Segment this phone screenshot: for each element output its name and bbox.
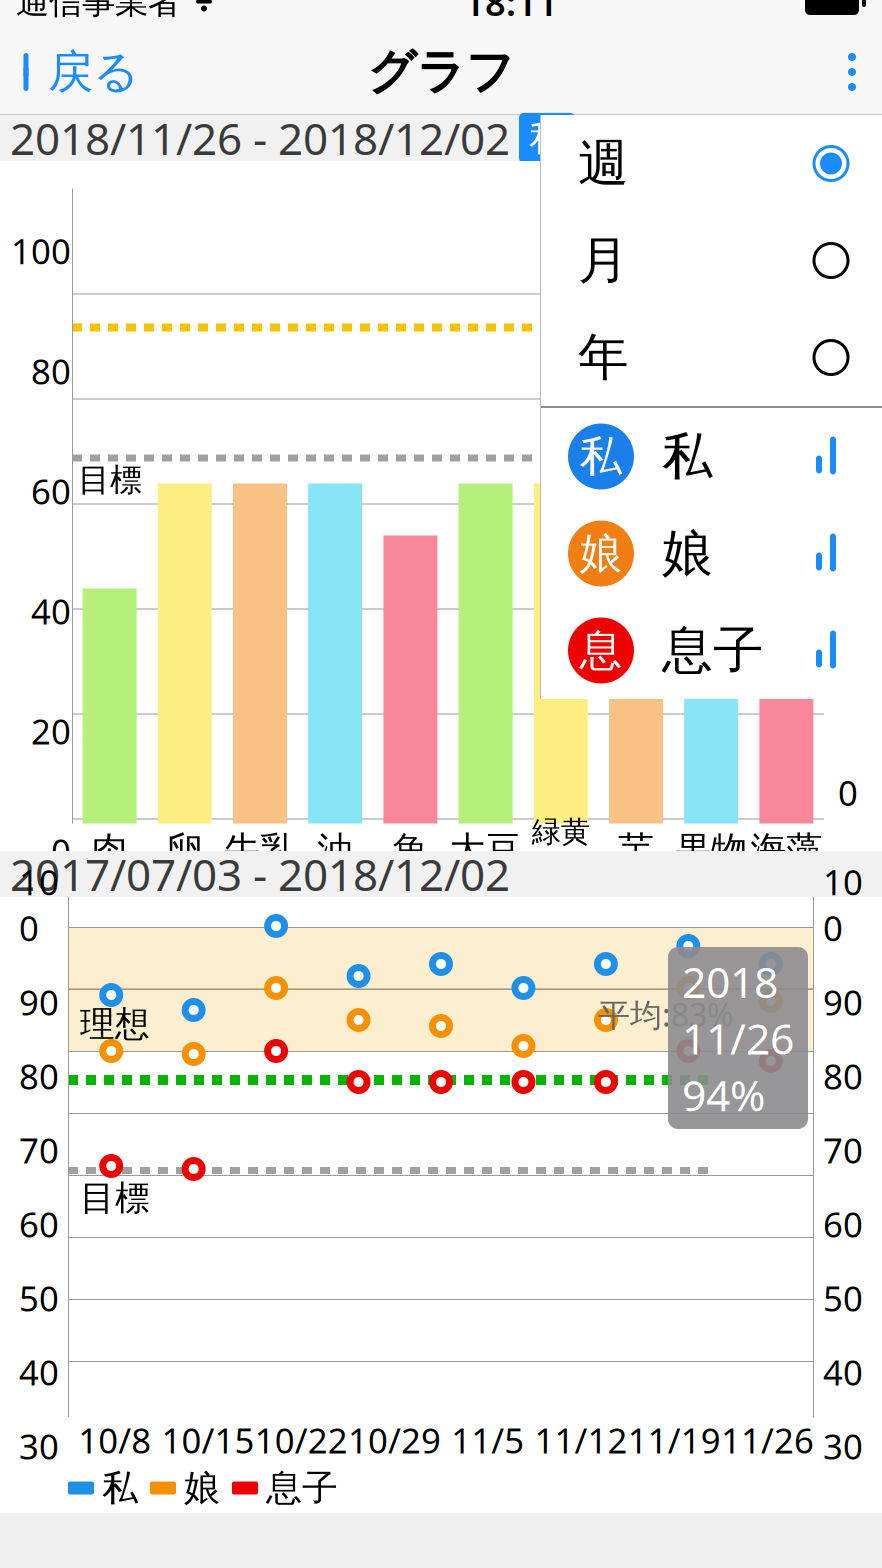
staticText: 平均:83% — [598, 993, 734, 1035]
staticText: 卵 — [167, 828, 203, 872]
button[interactable]: 戻る — [0, 34, 155, 110]
staticText: 年 — [578, 326, 629, 389]
staticText: 10/29 — [348, 1417, 441, 1463]
staticText: 11/5 — [451, 1417, 524, 1463]
staticText: グラフ — [367, 42, 514, 101]
staticText: 80 — [31, 348, 71, 394]
staticText: 月 — [578, 229, 629, 292]
staticText: 目標 — [80, 1177, 150, 1220]
staticText: 戻る — [48, 44, 139, 100]
staticText: 10/22 — [255, 1417, 348, 1463]
staticText: 理想 — [80, 1003, 150, 1046]
staticText: 私 — [579, 430, 622, 483]
staticText: 2018 — [682, 953, 778, 1010]
staticText: 80 — [19, 1053, 59, 1099]
staticText: 30 — [19, 1423, 59, 1469]
staticText: 11/26 — [682, 1010, 794, 1066]
staticText: 70 — [19, 1127, 59, 1173]
button[interactable]: 息 — [540, 602, 882, 699]
button[interactable]: 私 — [540, 408, 882, 505]
staticText: 94% — [682, 1066, 765, 1123]
staticText: 18:11 — [464, 0, 558, 26]
button[interactable]: Menu — [822, 41, 882, 103]
staticText: 魚 — [392, 828, 428, 872]
staticText: 10/8 — [78, 1417, 151, 1463]
staticText: 私 — [662, 425, 713, 488]
staticText: 油 — [317, 828, 353, 872]
staticText: 50 — [19, 1275, 59, 1321]
staticText: 娘 — [184, 1466, 220, 1510]
staticText: 100 — [19, 859, 59, 951]
staticText: 通信事業者 — [16, 0, 181, 22]
staticText: 11/26 — [721, 1417, 814, 1463]
staticText: 娘 — [579, 527, 622, 580]
staticText: 肉 — [92, 828, 128, 872]
button[interactable]: 月 — [540, 212, 882, 309]
staticText: 60 — [19, 1201, 59, 1247]
staticText: 40 — [31, 588, 71, 634]
staticText: 10/15 — [161, 1417, 254, 1463]
staticText: 息子 — [662, 619, 764, 682]
staticText: 私 — [529, 116, 565, 160]
staticText: 2018/11/26 - 2018/12/02 — [10, 109, 510, 167]
staticText: 私 — [102, 1466, 138, 1510]
staticText: 緑黄色野 — [532, 814, 590, 886]
staticText: 海藻 — [750, 828, 822, 872]
staticText: 目標 — [78, 460, 142, 500]
staticText: 牛乳 — [224, 828, 296, 872]
staticText: 11/12 — [534, 1417, 627, 1463]
staticText: 40 — [19, 1349, 59, 1395]
staticText: 50 — [823, 1275, 863, 1321]
staticText: 週 — [578, 132, 629, 195]
staticText: 芋 — [618, 828, 654, 872]
staticText: 大豆 — [450, 828, 522, 872]
button[interactable]: 週 — [540, 115, 882, 212]
staticText: 100 — [823, 859, 863, 951]
staticText: 100 — [11, 228, 71, 274]
staticText: 40 — [823, 1349, 863, 1395]
staticText: 60 — [31, 468, 71, 514]
staticText: 娘 — [662, 522, 713, 585]
staticText: 30 — [823, 1423, 863, 1469]
staticText: 70 — [823, 1127, 863, 1173]
staticText: 80 — [823, 1053, 863, 1099]
button[interactable]: 娘 — [540, 505, 882, 602]
staticText: 息子 — [266, 1466, 338, 1510]
staticText: 20 — [31, 708, 71, 754]
staticText: 0 — [838, 769, 858, 815]
staticText: 90 — [19, 979, 59, 1025]
staticText: 0 — [51, 828, 71, 874]
staticText: 果物 — [675, 828, 747, 872]
staticText: 2017/07/03 - 2018/12/02 — [10, 845, 510, 903]
staticText: 60 — [823, 1201, 863, 1247]
staticText: 11/19 — [628, 1417, 721, 1463]
button[interactable]: 年 — [540, 309, 882, 406]
staticText: 息 — [579, 624, 622, 677]
staticText: 90 — [823, 979, 863, 1025]
